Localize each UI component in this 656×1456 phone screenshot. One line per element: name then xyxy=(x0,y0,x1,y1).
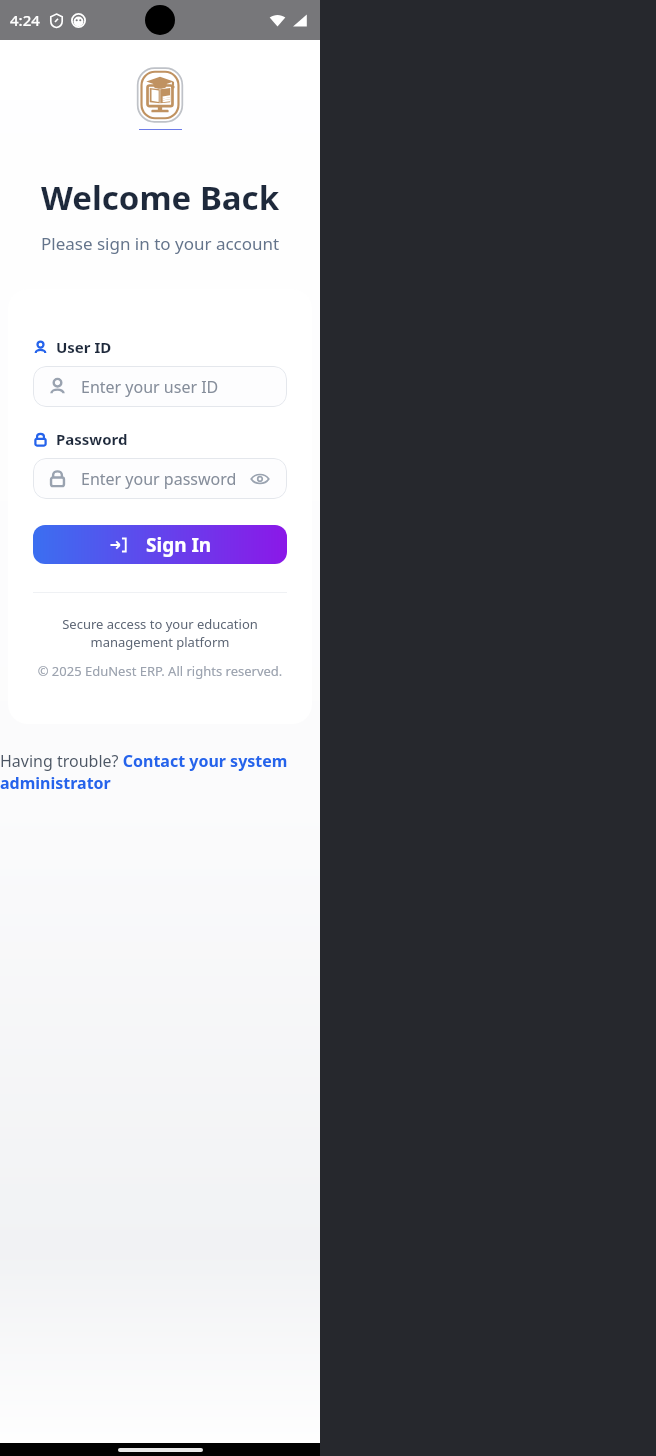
button[interactable]: Enter your user ID xyxy=(33,366,287,407)
staticText: © 2025 EduNest ERP. All rights reserved. xyxy=(33,662,287,680)
button[interactable]: Enter your password xyxy=(33,458,287,499)
staticText: 4:24 xyxy=(10,10,40,30)
staticText: User ID xyxy=(56,337,112,357)
staticText: Sign In xyxy=(146,532,212,558)
staticText: Secure access to your education manageme… xyxy=(33,615,287,651)
button[interactable]: Having trouble? Contact your system admi… xyxy=(0,750,320,794)
button[interactable]: Sign In xyxy=(33,525,287,564)
staticText: Enter your user ID xyxy=(81,376,272,398)
staticText: Enter your password xyxy=(81,468,248,490)
staticText: Welcome Back xyxy=(41,175,280,220)
staticText: Please sign in to your account xyxy=(41,232,280,255)
staticText: Having trouble? Contact your system admi… xyxy=(0,750,320,794)
button[interactable]: Show password xyxy=(248,467,272,491)
staticText: Password xyxy=(56,429,128,449)
